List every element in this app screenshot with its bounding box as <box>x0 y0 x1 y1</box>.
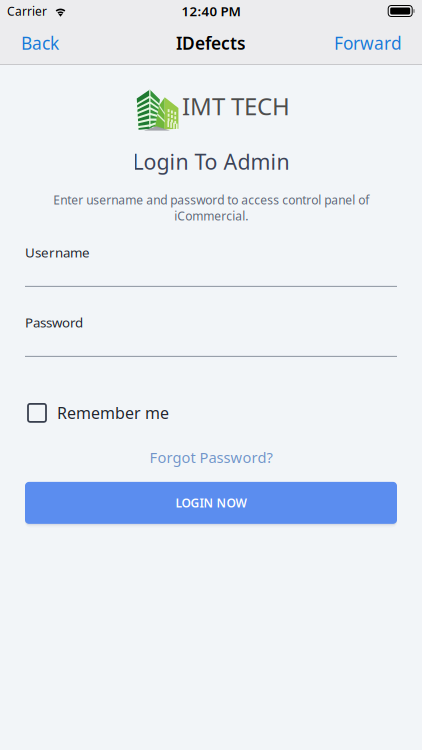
staticText: Forgot Password? <box>149 448 272 467</box>
button[interactable]: Remember me <box>25 404 397 422</box>
staticText: Username <box>25 243 90 261</box>
staticText: IMT TECH <box>182 90 290 122</box>
staticText: Login To Admin <box>132 147 289 176</box>
staticText: 12:40 PM <box>181 2 240 20</box>
button[interactable]: Forgot Password? <box>25 450 397 465</box>
staticText: LOGIN NOW <box>175 495 246 511</box>
staticText: IDefects <box>176 31 246 54</box>
staticText: Forward <box>334 31 402 54</box>
staticText: Enter username and password to access co… <box>53 192 369 224</box>
button[interactable]: LOGIN NOW <box>25 482 397 524</box>
staticText: Back <box>21 31 59 54</box>
button[interactable]: Forward <box>322 22 422 64</box>
staticText: Password <box>25 313 83 331</box>
staticText: Remember me <box>57 402 169 423</box>
button[interactable]: Back <box>0 22 71 64</box>
staticText: Carrier <box>7 3 47 19</box>
